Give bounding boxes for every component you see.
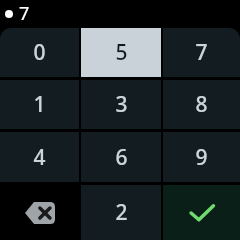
staticText: 6 [115,143,128,172]
staticText: 4 [33,143,46,172]
button[interactable]: Backspace [0,185,79,240]
button[interactable]: 5 [81,28,161,77]
staticText: 1 [33,90,46,119]
staticText: 5 [115,38,128,67]
staticText: 3 [115,90,128,119]
staticText: 8 [195,90,208,119]
button[interactable]: 6 [81,132,161,182]
button[interactable]: 9 [163,132,240,182]
button[interactable]: 3 [81,80,161,129]
button[interactable]: 4 [0,132,79,182]
button[interactable]: 0 [0,28,79,77]
staticText: 0 [33,38,46,67]
button[interactable]: 1 [0,80,79,129]
button[interactable]: 2 [81,185,161,240]
staticText: 9 [195,143,208,172]
staticText: 2 [115,198,128,227]
staticText: 7 [19,1,30,26]
button[interactable]: 8 [163,80,240,129]
button[interactable]: 7 [163,28,240,77]
staticText: 7 [195,38,208,67]
button[interactable]: Confirm [163,185,240,240]
